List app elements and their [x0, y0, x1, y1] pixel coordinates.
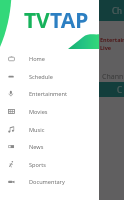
staticText: Entertainment — [100, 36, 124, 43]
other: Movies — [8, 108, 15, 115]
staticText: Channel — [102, 72, 124, 79]
other: Schedule — [8, 73, 15, 80]
button[interactable]: Sports — [0, 156, 99, 173]
button[interactable]: Home — [0, 50, 99, 67]
staticText: Music — [29, 126, 45, 134]
staticText: TV — [24, 6, 50, 35]
other: Entertainment — [8, 90, 15, 97]
staticText: Ch — [112, 5, 122, 16]
staticText: Movies — [29, 108, 48, 116]
other: News — [8, 143, 15, 150]
staticText: C — [117, 84, 123, 95]
button[interactable]: Movies — [0, 103, 99, 120]
button[interactable]: Music — [0, 121, 99, 138]
staticText: Schedule — [29, 73, 53, 81]
other: Documentary — [8, 178, 15, 185]
staticText: Live — [100, 44, 112, 51]
other: Music — [8, 126, 15, 133]
button[interactable]: News — [0, 138, 99, 155]
staticText: News — [29, 143, 44, 151]
staticText: Entertainment — [29, 90, 67, 98]
staticText: Sports — [29, 161, 46, 169]
button[interactable]: Schedule — [0, 68, 99, 85]
other: Home — [8, 55, 15, 62]
other: Sports — [8, 161, 15, 168]
staticText: Home — [29, 55, 45, 63]
button[interactable]: Documentary — [0, 173, 99, 190]
staticText: Documentary — [29, 178, 65, 186]
button[interactable]: Entertainment — [0, 85, 99, 102]
staticText: TAP — [50, 6, 89, 35]
